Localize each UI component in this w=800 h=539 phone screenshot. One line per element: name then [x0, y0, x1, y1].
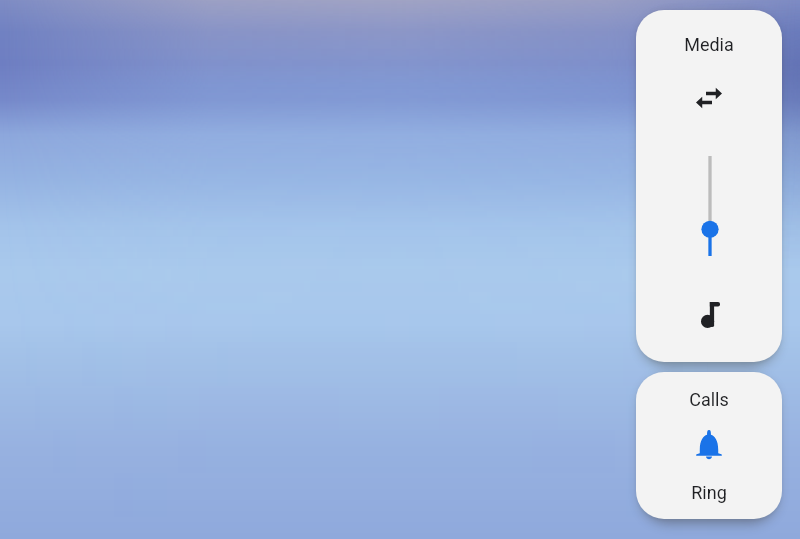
staticText: Media — [636, 34, 782, 55]
staticText: Calls — [636, 389, 782, 410]
staticText: Ring — [636, 482, 782, 503]
button[interactable]: Switch output device — [675, 74, 743, 122]
button[interactable]: Media volume — [690, 154, 730, 266]
button[interactable]: Ring — [685, 421, 733, 469]
button[interactable]: Calls — [636, 372, 782, 519]
button[interactable]: Media output — [686, 291, 734, 339]
